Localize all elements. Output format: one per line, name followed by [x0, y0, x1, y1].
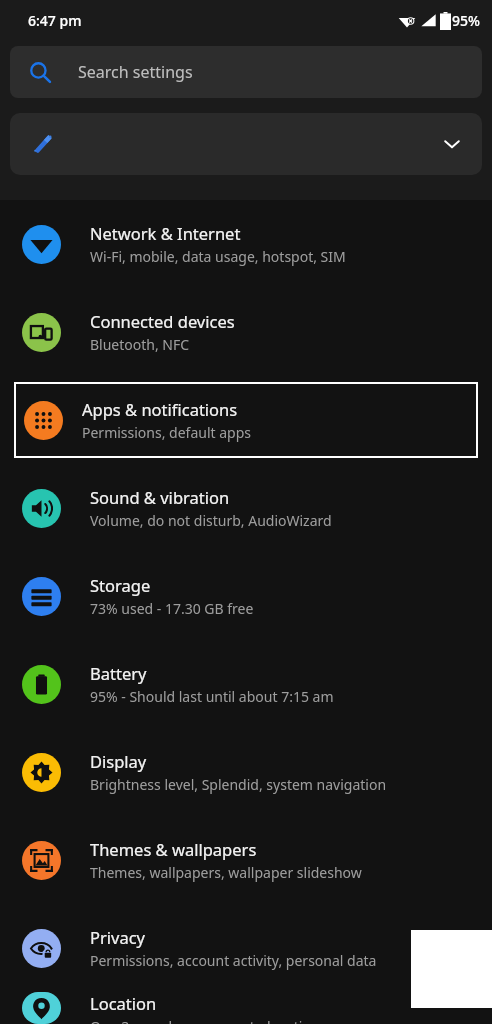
staticText: 95%: [452, 11, 480, 30]
staticText: Volume, do not disturb, AudioWizard: [90, 511, 332, 530]
button[interactable]: Sound & vibration: [0, 464, 492, 552]
staticText: 6:47 pm: [28, 11, 82, 30]
staticText: Network & Internet: [90, 222, 241, 244]
button[interactable]: Expand: [430, 122, 474, 166]
staticText: Sound & vibration: [90, 486, 230, 508]
staticText: Bluetooth, NFC: [90, 335, 190, 354]
button[interactable]: Apps & notifications: [14, 382, 478, 458]
button[interactable]: Battery: [0, 640, 492, 728]
staticText: Location: [90, 992, 157, 1014]
staticText: On - 3 apps have access to location: [90, 1017, 320, 1024]
button[interactable]: Network & Internet: [0, 200, 492, 288]
staticText: Wi-Fi, mobile, data usage, hotspot, SIM: [90, 247, 346, 266]
staticText: Connected devices: [90, 310, 235, 332]
button[interactable]: Tips: [10, 113, 482, 175]
other: Tips: [30, 131, 56, 157]
button[interactable]: Connected devices: [0, 288, 492, 376]
button[interactable]: Themes & wallpapers: [0, 816, 492, 904]
staticText: Permissions, default apps: [82, 423, 252, 442]
button[interactable]: Display: [0, 728, 492, 816]
staticText: Privacy: [90, 926, 146, 948]
staticText: Storage: [90, 574, 151, 596]
staticText: Search settings: [78, 61, 193, 83]
staticText: 73% used - 17.30 GB free: [90, 599, 254, 618]
button[interactable]: Privacy: [0, 904, 492, 992]
staticText: Battery: [90, 662, 147, 684]
staticText: Themes, wallpapers, wallpaper slideshow: [90, 863, 362, 882]
staticText: Themes & wallpapers: [90, 838, 257, 860]
button[interactable]: Location: [0, 992, 492, 1024]
button[interactable]: Storage: [0, 552, 492, 640]
staticText: Permissions, account activity, personal …: [90, 951, 377, 970]
staticText: Apps & notifications: [82, 398, 238, 420]
button[interactable]: Search settings: [10, 46, 482, 98]
staticText: Display: [90, 750, 147, 772]
staticText: Brightness level, Splendid, system navig…: [90, 775, 387, 794]
staticText: 95% - Should last until about 7:15 am: [90, 687, 334, 706]
